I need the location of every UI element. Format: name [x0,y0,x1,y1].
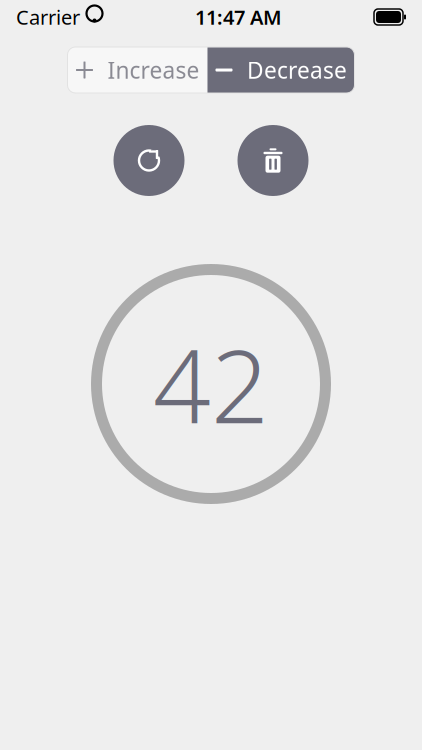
staticText: 11:47 AM [195,4,282,30]
staticText: Decrease [247,55,347,85]
staticText: Carrier [16,4,80,30]
staticText: 42 [153,317,269,451]
button[interactable]: Delete [237,125,308,196]
button[interactable]: Increase [67,47,207,93]
staticText: Increase [107,55,199,85]
button[interactable]: Reset [113,125,184,196]
button[interactable]: Decrease [207,47,354,93]
